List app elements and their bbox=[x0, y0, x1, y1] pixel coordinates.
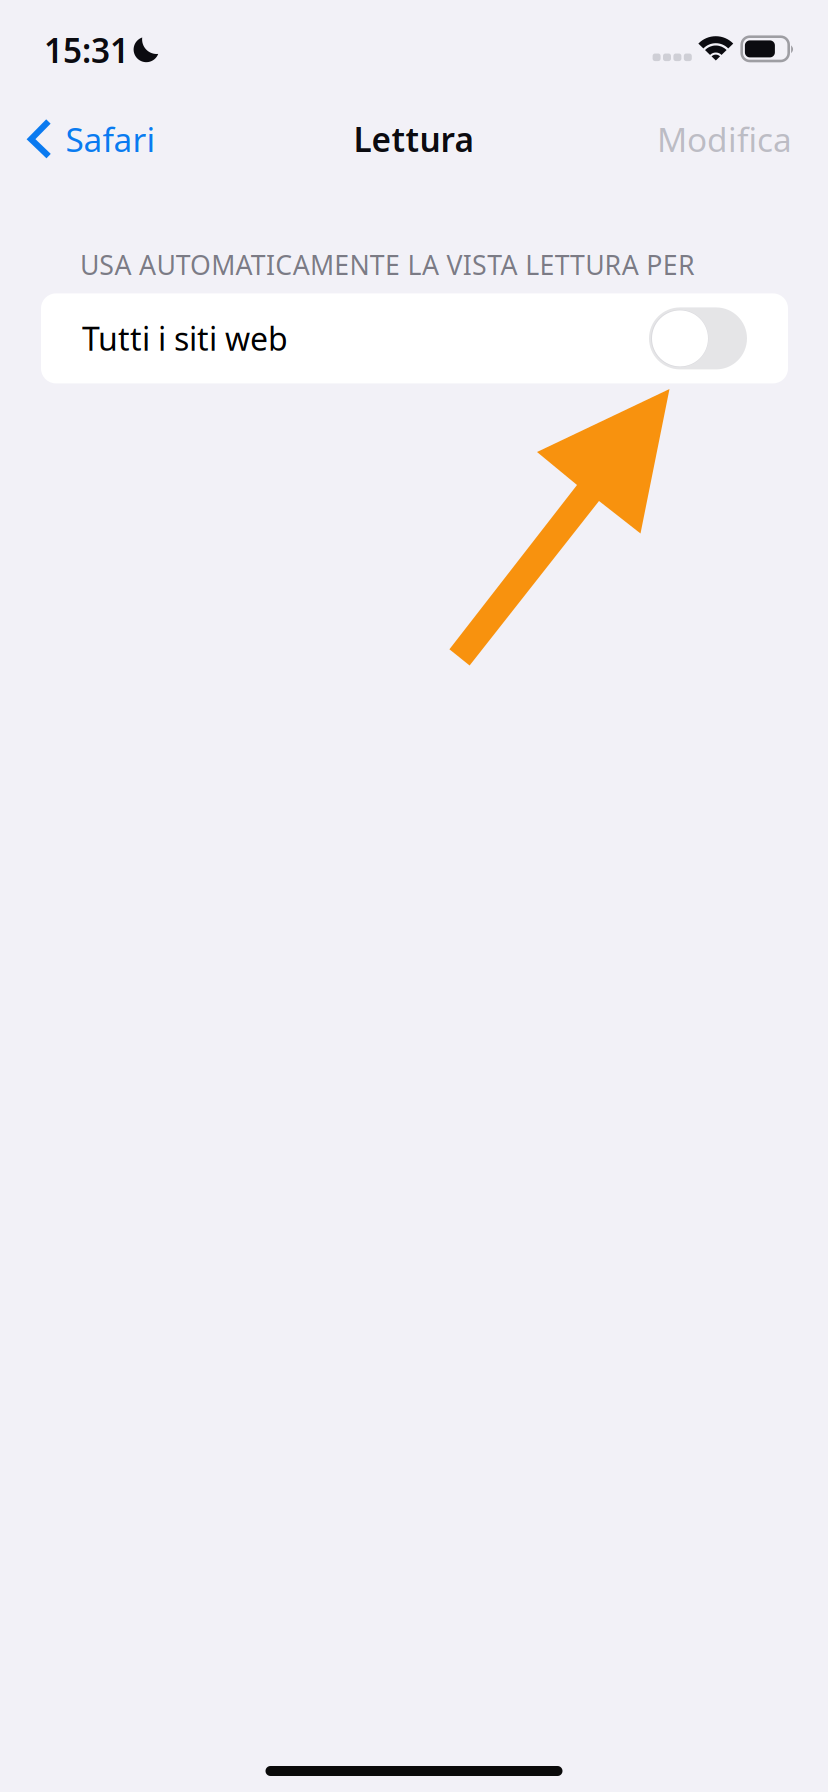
staticText: Modifica bbox=[657, 117, 792, 161]
staticText: 15:31 bbox=[44, 28, 129, 72]
button[interactable]: Tutti i siti web, disattivato bbox=[649, 307, 747, 369]
staticText: USA AUTOMATICAMENTE LA VISTA LETTURA PER bbox=[80, 247, 695, 282]
staticText: Lettura bbox=[353, 117, 474, 161]
button[interactable]: Tutti i siti web bbox=[41, 293, 788, 383]
button[interactable]: Modifica bbox=[637, 108, 828, 176]
button[interactable]: Safari bbox=[0, 108, 169, 176]
staticText: Safari bbox=[65, 117, 155, 161]
staticText: Tutti i siti web bbox=[82, 317, 288, 360]
